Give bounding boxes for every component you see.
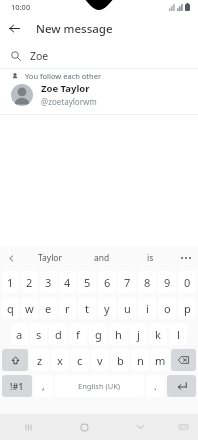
staticText: , [42, 379, 45, 393]
button[interactable]: , [34, 375, 53, 397]
button[interactable]: g [89, 323, 107, 345]
staticText: f [76, 327, 80, 342]
button[interactable]: 3 [40, 271, 57, 293]
button[interactable]: and [78, 247, 126, 269]
staticText: 10:00 [11, 2, 31, 12]
staticText: k [155, 327, 161, 342]
button[interactable]: 6 [98, 271, 116, 293]
button[interactable]: b [111, 349, 129, 371]
button[interactable]: Enter [167, 375, 196, 397]
staticText: 7 [124, 275, 131, 290]
staticText: 5 [84, 275, 91, 290]
staticText: . [154, 379, 157, 393]
staticText: 4 [64, 275, 71, 290]
staticText: 3 [45, 275, 52, 290]
button[interactable]: Zoe [0, 43, 198, 68]
staticText: m [155, 353, 166, 368]
staticText: New message [36, 21, 113, 37]
button[interactable]: . [146, 375, 165, 397]
staticText: is [147, 252, 154, 264]
staticText: c [77, 353, 83, 368]
staticText: r [65, 301, 70, 316]
button[interactable]: 4 [59, 271, 76, 293]
button[interactable]: h [109, 323, 127, 345]
staticText: u [124, 301, 131, 316]
staticText: n [137, 353, 144, 368]
button[interactable]: k [149, 323, 167, 345]
staticText: Zoe [30, 49, 49, 63]
button[interactable]: v [91, 349, 109, 371]
staticText: You follow each other [25, 71, 102, 81]
button[interactable]: 5 [78, 271, 96, 293]
staticText: 0 [184, 275, 191, 290]
staticText: e [45, 301, 52, 316]
button[interactable]: w [21, 297, 38, 319]
button[interactable]: a [11, 323, 28, 345]
button[interactable]: j [129, 323, 147, 345]
button[interactable]: p [178, 297, 196, 319]
button[interactable]: q [2, 297, 19, 319]
button[interactable]: i [138, 297, 156, 319]
button[interactable]: x [51, 349, 69, 371]
staticText: 1 [7, 275, 14, 290]
staticText: 6 [104, 275, 111, 290]
button[interactable]: d [49, 323, 67, 345]
button[interactable]: You follow each other [0, 69, 198, 114]
button[interactable]: t [78, 297, 96, 319]
staticText: s [36, 327, 42, 342]
staticText: y [104, 301, 110, 316]
button[interactable]: Keyboard [168, 414, 198, 440]
button[interactable]: l [169, 323, 187, 345]
button[interactable]: 1 [2, 271, 19, 293]
staticText: h [115, 327, 122, 342]
staticText: l [177, 327, 180, 342]
button[interactable]: Previous [0, 247, 22, 269]
button[interactable]: 7 [118, 271, 136, 293]
button[interactable]: r [59, 297, 76, 319]
button[interactable]: 8 [138, 271, 156, 293]
staticText: a [16, 327, 23, 342]
button[interactable]: Back [0, 14, 29, 43]
staticText: g [95, 327, 102, 342]
button[interactable]: m [151, 349, 169, 371]
button[interactable]: y [98, 297, 116, 319]
button[interactable]: e [40, 297, 57, 319]
button[interactable]: u [118, 297, 136, 319]
button[interactable]: !#1 [2, 375, 32, 397]
button[interactable]: z [30, 349, 49, 371]
staticText: t [85, 301, 89, 316]
staticText: d [55, 327, 62, 342]
staticText: w [25, 301, 34, 316]
button[interactable]: c [71, 349, 89, 371]
button[interactable]: o [158, 297, 176, 319]
button[interactable]: Shift [2, 349, 28, 371]
staticText: p [184, 301, 191, 316]
staticText: Zoe Taylor [41, 82, 90, 95]
staticText: !#1 [10, 380, 24, 392]
button[interactable]: More [174, 247, 198, 269]
staticText: v [97, 353, 103, 368]
staticText: x [57, 353, 63, 368]
staticText: j [137, 327, 140, 342]
staticText: q [7, 301, 14, 316]
button[interactable]: Backspace [171, 349, 196, 371]
button[interactable]: Taylor [22, 247, 78, 269]
button[interactable]: 9 [158, 271, 176, 293]
staticText: o [164, 301, 171, 316]
staticText: i [146, 301, 149, 316]
button[interactable]: 0 [178, 271, 196, 293]
staticText: 2 [26, 275, 33, 290]
button[interactable]: English (UK) [55, 375, 144, 397]
button[interactable]: 2 [21, 271, 38, 293]
button[interactable]: f [69, 323, 87, 345]
staticText: English (UK) [78, 381, 121, 391]
button[interactable]: Recents [0, 414, 56, 440]
staticText: @zoetaylorwm [41, 96, 97, 107]
button[interactable]: Home [56, 414, 112, 440]
staticText: and [94, 252, 110, 264]
button[interactable]: s [30, 323, 47, 345]
staticText: z [37, 353, 43, 368]
button[interactable]: n [131, 349, 149, 371]
button[interactable]: is [126, 247, 174, 269]
